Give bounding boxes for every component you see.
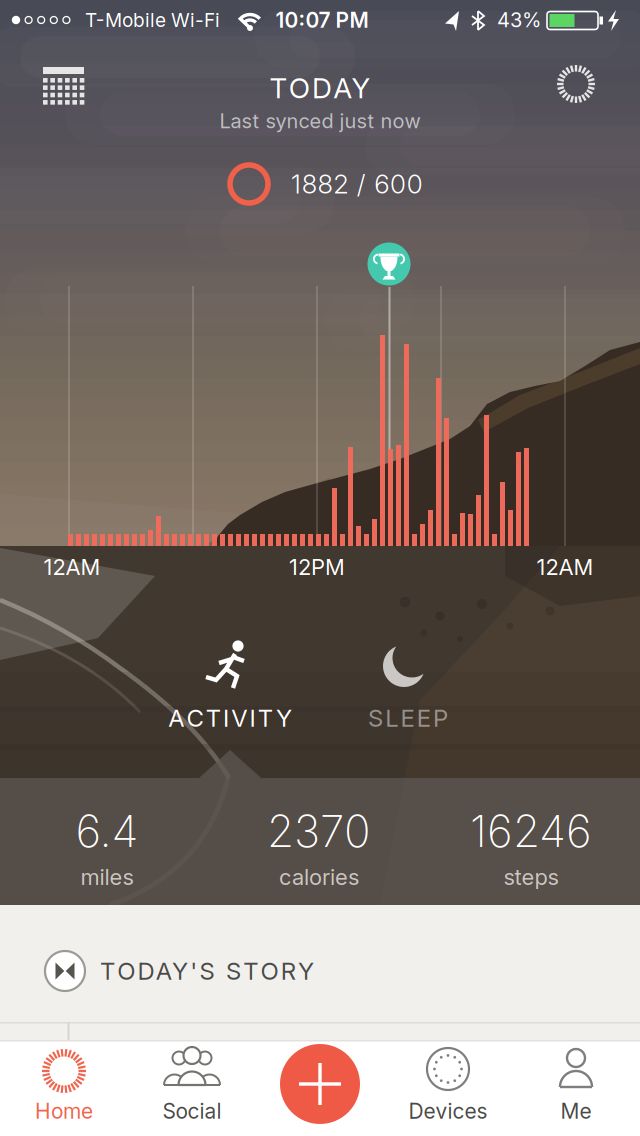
staticText: TODAY <box>269 71 370 105</box>
button[interactable]: Devices <box>384 1040 512 1136</box>
button[interactable] <box>256 1040 384 1136</box>
staticText: 6.4 <box>75 804 138 858</box>
staticText: 10:07 PM <box>275 7 368 33</box>
staticText: 2370 <box>267 804 371 858</box>
staticText: Social <box>162 1098 221 1124</box>
staticText: Me <box>560 1098 591 1124</box>
staticText: miles <box>80 864 133 890</box>
button[interactable]: Home <box>0 1040 128 1136</box>
staticText: Devices <box>408 1098 487 1124</box>
staticText: TODAY'S STORY <box>100 956 314 985</box>
staticText: steps <box>503 864 558 890</box>
staticText: SLEEP <box>368 703 448 732</box>
staticText: calories <box>279 864 359 890</box>
staticText: 12AM <box>536 554 593 580</box>
staticText: Home <box>35 1098 93 1124</box>
staticText: 16246 <box>470 804 592 858</box>
staticText: 43% <box>497 8 541 32</box>
staticText: ACTIVITY <box>168 703 292 732</box>
staticText: 12PM <box>289 554 345 580</box>
staticText: Last synced just now <box>219 109 420 133</box>
button[interactable] <box>43 67 85 105</box>
staticText: 12AM <box>43 554 100 580</box>
button[interactable]: TODAY'S STORY <box>0 905 640 1022</box>
button[interactable]: SLEEP <box>330 628 480 738</box>
button[interactable] <box>554 62 598 106</box>
button[interactable]: ACTIVITY <box>145 628 315 738</box>
staticText: 1882 / 600 <box>291 168 423 200</box>
staticText: T-Mobile Wi-Fi <box>85 8 220 31</box>
button[interactable]: Social <box>128 1040 256 1136</box>
button[interactable]: Me <box>512 1040 640 1136</box>
